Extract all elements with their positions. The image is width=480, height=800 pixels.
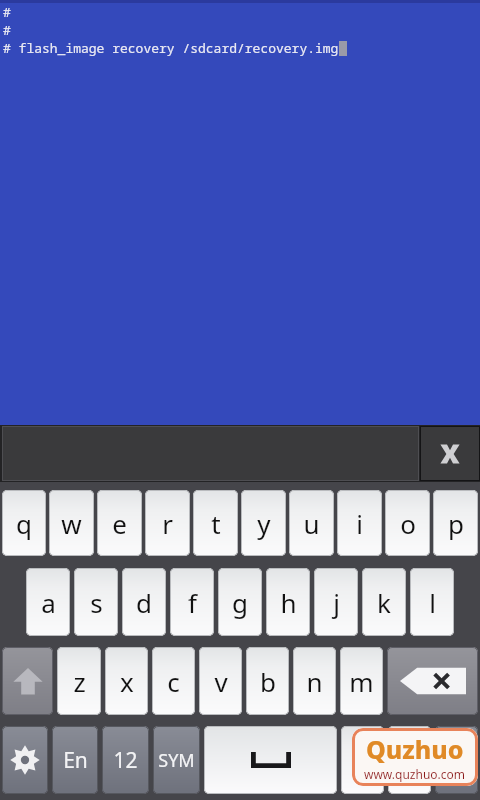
button[interactable]: g	[218, 568, 262, 636]
button[interactable]: l	[410, 568, 454, 636]
staticText: y	[257, 506, 271, 541]
button[interactable]: s	[74, 568, 118, 636]
staticText: a	[41, 585, 56, 620]
staticText: r	[162, 506, 173, 541]
staticText: SYM	[158, 748, 195, 773]
staticText: # flash_image recovery /sdcard/recovery.…	[3, 39, 339, 57]
staticText: e	[112, 506, 127, 541]
button[interactable]: ,	[341, 726, 384, 794]
staticText: www.quzhuo.com	[364, 766, 466, 782]
button[interactable]	[2, 426, 419, 481]
button[interactable]: w	[49, 490, 94, 556]
button[interactable]: n	[293, 647, 336, 715]
button[interactable]: z	[57, 647, 101, 715]
staticText: z	[73, 664, 86, 699]
button[interactable]: p	[433, 490, 478, 556]
button[interactable]: SYM	[153, 726, 200, 794]
staticText: En	[63, 746, 88, 775]
staticText: #	[3, 21, 11, 39]
staticText: s	[90, 585, 103, 620]
button[interactable]: Space	[204, 726, 337, 794]
button[interactable]: Close keyboard	[420, 426, 480, 481]
button[interactable]: Shift	[2, 647, 53, 715]
staticText: l	[429, 585, 436, 620]
button[interactable]: v	[199, 647, 242, 715]
button[interactable]: t	[193, 490, 238, 556]
button[interactable]: d	[122, 568, 166, 636]
button[interactable]	[435, 726, 478, 794]
staticText: f	[188, 585, 197, 620]
staticText: j	[333, 585, 340, 620]
button[interactable]: Settings	[2, 726, 48, 794]
button[interactable]: m	[340, 647, 383, 715]
button[interactable]: f	[170, 568, 214, 636]
staticText: g	[232, 585, 248, 620]
button[interactable]	[388, 726, 431, 794]
staticText: m	[349, 664, 374, 699]
staticText: i	[356, 506, 363, 541]
staticText: o	[400, 506, 416, 541]
button[interactable]: r	[145, 490, 190, 556]
staticText: t	[211, 506, 221, 541]
button[interactable]: x	[105, 647, 148, 715]
button[interactable]: Backspace	[387, 647, 478, 715]
button[interactable]: a	[26, 568, 70, 636]
staticText: d	[136, 585, 152, 620]
staticText: u	[303, 506, 320, 541]
staticText: n	[306, 664, 323, 699]
staticText: c	[167, 664, 180, 699]
button[interactable]: e	[97, 490, 142, 556]
staticText: #	[3, 3, 11, 21]
staticText: Quzhuo	[366, 732, 464, 766]
button[interactable]: h	[266, 568, 310, 636]
staticText: v	[214, 664, 228, 699]
staticText: x	[120, 664, 134, 699]
button[interactable]: En	[52, 726, 98, 794]
button[interactable]: y	[241, 490, 286, 556]
staticText: b	[260, 664, 276, 699]
button[interactable]: b	[246, 647, 289, 715]
button[interactable]: 12	[102, 726, 149, 794]
button[interactable]: u	[289, 490, 334, 556]
button[interactable]: o	[385, 490, 430, 556]
button[interactable]: c	[152, 647, 195, 715]
staticText: p	[448, 506, 464, 541]
staticText: h	[280, 585, 297, 620]
button[interactable]: k	[362, 568, 406, 636]
staticText: k	[377, 585, 391, 620]
button[interactable]: q	[2, 490, 46, 556]
staticText: 12	[113, 746, 138, 775]
staticText: w	[61, 506, 82, 541]
staticText: ,	[359, 743, 366, 778]
button[interactable]: j	[314, 568, 358, 636]
button[interactable]: i	[337, 490, 382, 556]
staticText: q	[16, 506, 32, 541]
